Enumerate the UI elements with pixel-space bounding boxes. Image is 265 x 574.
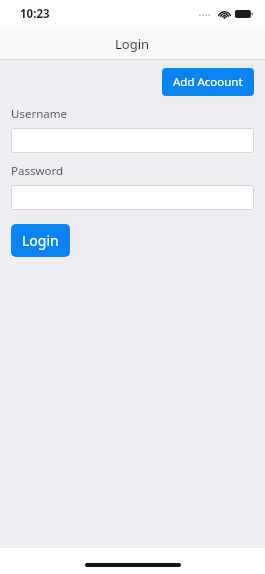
button[interactable]: Login [11,224,70,257]
staticText: Login [115,35,150,53]
staticText: Login [22,231,59,250]
staticText: Password [11,163,64,179]
staticText: Username [11,106,67,122]
button[interactable]: Add Acoount [162,68,254,96]
staticText: 10:23 [20,6,50,22]
button[interactable] [11,185,254,210]
button[interactable] [11,128,254,153]
staticText: Add Acoount [173,74,243,90]
